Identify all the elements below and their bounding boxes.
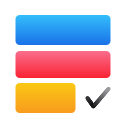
- button[interactable]: First reminder: [15, 15, 110, 45]
- button[interactable]: Third reminder: [15, 83, 75, 113]
- button[interactable]: Second reminder: [15, 51, 110, 78]
- button[interactable]: Completed: [0, 0, 128, 128]
